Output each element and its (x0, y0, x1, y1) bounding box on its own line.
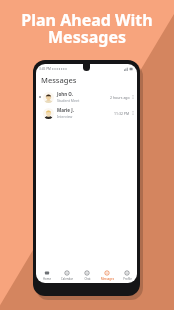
button[interactable]: Chat (77, 268, 97, 283)
staticText: Calendar (61, 277, 73, 281)
staticText: 3:45 PM (39, 67, 51, 71)
staticText: Plan Ahead With (0, 9, 174, 31)
button[interactable]: Marie J. (36, 105, 137, 121)
staticText: Chat (84, 277, 91, 281)
staticText: Messages (101, 277, 114, 281)
staticText: Student Meet (57, 98, 80, 103)
staticText: Profile (123, 277, 132, 281)
staticText: John O. (57, 91, 73, 97)
staticText: 2 hours ago (110, 95, 130, 100)
staticText: Messages (0, 26, 174, 48)
staticText: Marie J. (57, 107, 74, 113)
staticText: 11:32 PM (114, 111, 130, 116)
button[interactable]: Home (36, 268, 57, 283)
staticText: Messages (41, 75, 77, 85)
staticText: Interview (57, 114, 73, 119)
button[interactable]: Profile (117, 268, 137, 283)
button[interactable]: Calendar (57, 268, 77, 283)
button[interactable]: John O. (36, 89, 137, 105)
button[interactable]: Messages (97, 268, 117, 283)
staticText: Home (43, 277, 51, 281)
